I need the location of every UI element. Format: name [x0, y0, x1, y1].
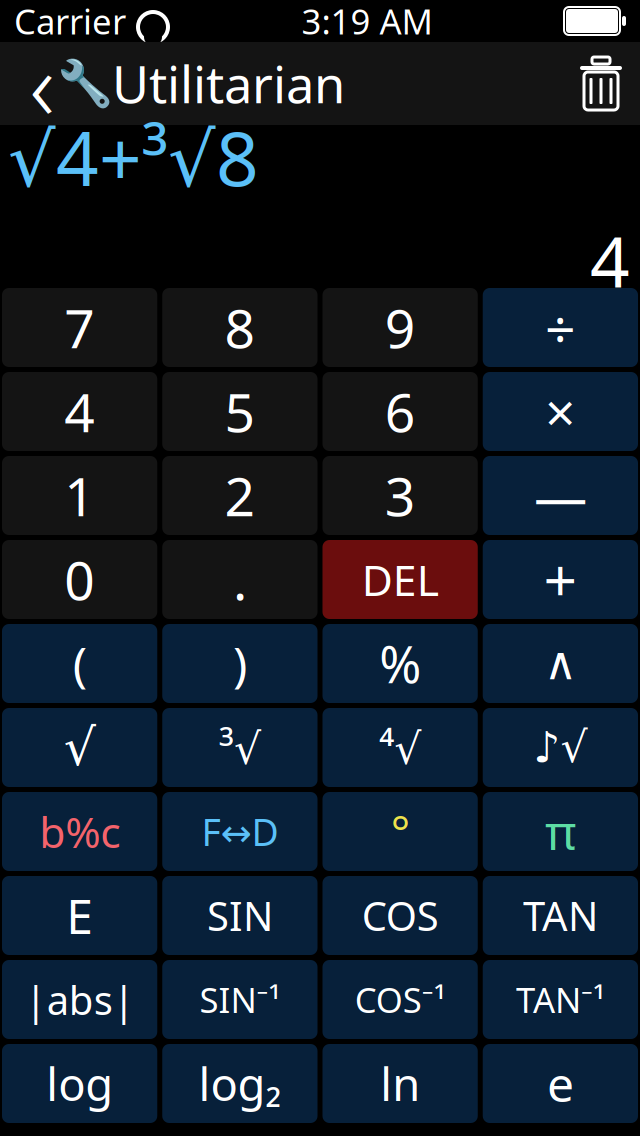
- button[interactable]: π: [483, 792, 638, 871]
- staticText: 9: [385, 292, 416, 363]
- button[interactable]: Back: [16, 52, 68, 114]
- staticText: 4: [590, 214, 630, 307]
- button[interactable]: Clear: [578, 55, 624, 111]
- staticText: Utilitarian: [112, 50, 345, 117]
- button[interactable]: log₂: [162, 1044, 317, 1123]
- staticText: 3:19 AM: [301, 0, 432, 44]
- button[interactable]: 4: [2, 372, 157, 451]
- button[interactable]: 3: [322, 456, 478, 535]
- button[interactable]: ³√: [162, 708, 317, 787]
- staticText: 4: [64, 376, 95, 447]
- staticText: COS: [362, 889, 439, 942]
- button[interactable]: b%c: [2, 792, 157, 871]
- button[interactable]: COS: [322, 876, 478, 955]
- staticText: 🔧: [57, 58, 113, 109]
- button[interactable]: 1: [2, 456, 157, 535]
- staticText: E: [66, 884, 93, 947]
- staticText: (: [73, 632, 87, 695]
- staticText: .: [233, 544, 247, 615]
- button[interactable]: ): [162, 624, 317, 703]
- button[interactable]: log: [2, 1044, 157, 1123]
- button[interactable]: 2: [162, 456, 317, 535]
- button[interactable]: (: [2, 624, 157, 703]
- button[interactable]: TAN: [483, 876, 638, 955]
- button[interactable]: .: [162, 540, 317, 619]
- staticText: ∧: [544, 638, 577, 689]
- button[interactable]: E: [2, 876, 157, 955]
- staticText: |abs|: [25, 973, 135, 1026]
- button[interactable]: e: [483, 1044, 638, 1123]
- staticText: TAN: [523, 889, 598, 942]
- button[interactable]: 7: [2, 288, 157, 367]
- staticText: SIN⁻¹: [199, 976, 280, 1022]
- staticText: ‹: [29, 20, 54, 147]
- button[interactable]: TAN⁻¹: [483, 960, 638, 1039]
- button[interactable]: ♪√: [483, 708, 638, 787]
- staticText: 2: [224, 460, 255, 531]
- button[interactable]: SIN⁻¹: [162, 960, 317, 1039]
- staticText: ÷: [545, 292, 576, 363]
- staticText: °: [391, 801, 410, 862]
- staticText: TAN⁻¹: [516, 976, 605, 1022]
- staticText: —: [534, 460, 587, 531]
- staticText: COS⁻¹: [355, 976, 446, 1022]
- button[interactable]: —: [483, 456, 638, 535]
- staticText: SIN: [207, 889, 273, 942]
- staticText: ln: [380, 1053, 420, 1114]
- button[interactable]: ⁴√: [322, 708, 478, 787]
- staticText: e: [547, 1052, 574, 1115]
- staticText: √4+³√8: [8, 107, 259, 207]
- staticText: log₂: [198, 1053, 281, 1114]
- staticText: 6: [385, 376, 416, 447]
- staticText: 3: [385, 460, 416, 531]
- staticText: DEL: [362, 551, 439, 608]
- staticText: 8: [224, 292, 255, 363]
- staticText: 0: [64, 544, 95, 615]
- staticText: ×: [545, 376, 576, 447]
- button[interactable]: COS⁻¹: [322, 960, 478, 1039]
- button[interactable]: %: [322, 624, 478, 703]
- button[interactable]: 6: [322, 372, 478, 451]
- staticText: ⁴√: [379, 719, 421, 776]
- button[interactable]: |abs|: [2, 960, 157, 1039]
- button[interactable]: ln: [322, 1044, 478, 1123]
- staticText: 7: [64, 292, 95, 363]
- staticText: F↔D: [201, 807, 278, 856]
- staticText: Carrier: [14, 0, 126, 44]
- staticText: π: [545, 800, 576, 863]
- staticText: ³√: [219, 719, 261, 776]
- staticText: √: [64, 719, 96, 776]
- button[interactable]: ÷: [483, 288, 638, 367]
- button[interactable]: 9: [322, 288, 478, 367]
- staticText: 1: [64, 460, 95, 531]
- button[interactable]: 8: [162, 288, 317, 367]
- button[interactable]: √: [2, 708, 157, 787]
- button[interactable]: SIN: [162, 876, 317, 955]
- staticText: %: [379, 630, 421, 697]
- button[interactable]: ×: [483, 372, 638, 451]
- button[interactable]: °: [322, 792, 478, 871]
- staticText: ): [233, 632, 247, 695]
- button[interactable]: DEL: [322, 540, 478, 619]
- staticText: +: [543, 540, 577, 618]
- button[interactable]: 0: [2, 540, 157, 619]
- button[interactable]: F↔D: [162, 792, 317, 871]
- staticText: log: [46, 1053, 113, 1114]
- button[interactable]: 5: [162, 372, 317, 451]
- button[interactable]: ∧: [483, 624, 638, 703]
- staticText: b%c: [39, 803, 120, 860]
- staticText: 5: [224, 376, 255, 447]
- staticText: ♪√: [533, 723, 587, 772]
- button[interactable]: +: [483, 540, 638, 619]
